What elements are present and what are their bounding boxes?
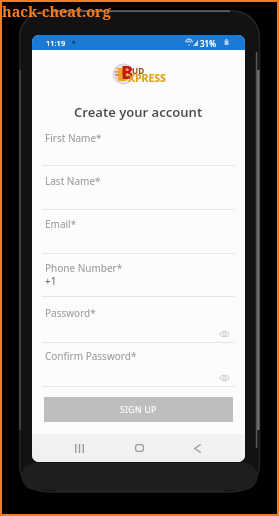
button[interactable]: Recent apps	[65, 434, 94, 462]
staticText: B	[117, 62, 130, 84]
staticText: Last Name*	[45, 174, 101, 188]
staticText: Phone Number*	[45, 261, 123, 275]
staticText: hack-cheat.org	[2, 1, 111, 21]
button[interactable]: Password*	[42, 304, 235, 343]
staticText: Password*	[45, 306, 96, 320]
button[interactable]: SIGN UP	[44, 397, 233, 422]
button[interactable]: Back	[183, 434, 212, 462]
staticText: 11:19	[46, 38, 66, 48]
staticText: SIGN UP	[120, 404, 157, 416]
staticText: Confirm Password*	[45, 349, 137, 363]
staticText: Email*	[45, 217, 77, 231]
staticText: 31%	[200, 38, 216, 49]
staticText: Create your account	[74, 103, 203, 121]
button[interactable]: Home	[125, 434, 154, 462]
button[interactable]: Phone Number*	[42, 259, 235, 297]
staticText: +1	[45, 274, 57, 288]
button[interactable]: Last Name*	[42, 172, 235, 210]
staticText: UD	[132, 65, 145, 76]
button[interactable]: First Name*	[42, 129, 235, 166]
button[interactable]: Email*	[42, 215, 235, 254]
staticText: First Name*	[45, 131, 102, 145]
staticText: B	[121, 60, 134, 82]
staticText: XPRESS	[128, 71, 166, 85]
button[interactable]: Confirm Password*	[42, 347, 235, 387]
